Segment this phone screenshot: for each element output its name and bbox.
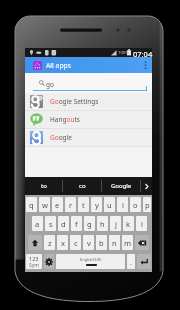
staticText: .: [130, 257, 133, 267]
button[interactable]: Keyboard settings: [44, 254, 54, 269]
button[interactable]: Google: [102, 177, 140, 195]
button[interactable]: a: [32, 216, 43, 231]
staticText: v: [87, 238, 91, 248]
staticText: r: [69, 200, 73, 210]
staticText: 100%: [118, 50, 129, 56]
button[interactable]: q: [26, 197, 37, 212]
staticText: d: [61, 219, 66, 229]
button[interactable]: .: [127, 254, 135, 269]
staticText: c: [74, 238, 78, 248]
button[interactable]: m: [122, 235, 133, 250]
staticText: b: [99, 238, 104, 248]
button[interactable]: v: [83, 235, 94, 250]
button[interactable]: f: [71, 216, 82, 231]
button[interactable]: x: [57, 235, 68, 250]
staticText: m: [124, 238, 132, 248]
staticText: English(UK): [80, 257, 102, 262]
button[interactable]: n: [109, 235, 120, 250]
staticText: 07:04: [133, 49, 153, 58]
button[interactable]: w: [39, 197, 50, 212]
button[interactable]: r: [65, 197, 76, 212]
button[interactable]: j: [110, 216, 121, 231]
staticText: q: [29, 200, 34, 210]
staticText: 123: [29, 255, 39, 262]
button[interactable]: co: [63, 177, 101, 195]
button[interactable]: d: [58, 216, 69, 231]
staticText: g: [87, 219, 92, 229]
staticText: w: [42, 200, 48, 210]
button[interactable]: l: [136, 216, 147, 231]
staticText: t: [82, 200, 85, 210]
staticText: z: [48, 238, 52, 248]
staticText: i: [122, 200, 124, 210]
staticText: Google: [50, 133, 72, 142]
staticText: go: [46, 80, 54, 89]
staticText: j: [115, 219, 117, 229]
staticText: Hangouts: [50, 115, 80, 124]
button[interactable]: More options: [139, 57, 152, 73]
button[interactable]: g: [84, 216, 95, 231]
staticText: s: [49, 219, 53, 229]
staticText: e: [55, 200, 60, 210]
staticText: All apps: [46, 61, 72, 70]
button[interactable]: b: [96, 235, 107, 250]
staticText: f: [75, 219, 78, 229]
staticText: p: [145, 200, 150, 210]
button[interactable]: u: [104, 197, 115, 212]
button[interactable]: Space: [56, 254, 125, 269]
staticText: n: [112, 238, 117, 248]
button[interactable]: t: [78, 197, 89, 212]
staticText: Google: [111, 182, 132, 190]
button[interactable]: p: [143, 197, 151, 212]
button[interactable]: c: [70, 235, 81, 250]
button[interactable]: s: [45, 216, 56, 231]
button[interactable]: Google Settings: [25, 93, 152, 111]
staticText: x: [61, 238, 65, 248]
staticText: co: [79, 182, 86, 190]
button[interactable]: to: [25, 177, 62, 195]
staticText: Sym: [29, 262, 39, 269]
button[interactable]: Google: [25, 129, 152, 147]
staticText: o: [133, 200, 138, 210]
staticText: Google Settings: [50, 97, 99, 106]
staticText: h: [100, 219, 105, 229]
button[interactable]: Hangouts: [25, 111, 152, 129]
button[interactable]: k: [123, 216, 134, 231]
button[interactable]: y: [91, 197, 102, 212]
button[interactable]: 123: [26, 254, 42, 269]
button[interactable]: i: [117, 197, 128, 212]
button[interactable]: z: [44, 235, 55, 250]
staticText: a: [35, 219, 40, 229]
button[interactable]: e: [52, 197, 63, 212]
staticText: l: [141, 219, 143, 229]
button[interactable]: Backspace: [135, 235, 149, 250]
button[interactable]: Shift: [28, 235, 42, 250]
staticText: to: [41, 182, 47, 190]
button[interactable]: o: [130, 197, 141, 212]
staticText: u: [107, 200, 112, 210]
button[interactable]: Enter: [137, 254, 151, 269]
staticText: y: [95, 200, 99, 210]
button[interactable]: More suggestions: [141, 177, 152, 195]
staticText: k: [126, 219, 131, 229]
button[interactable]: h: [97, 216, 108, 231]
